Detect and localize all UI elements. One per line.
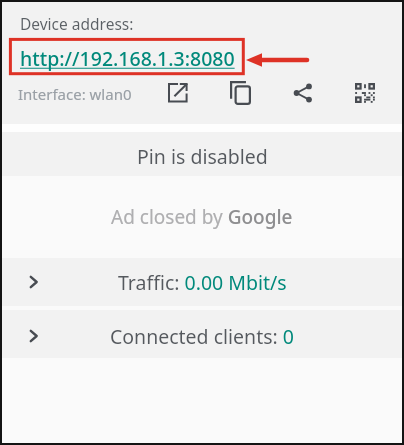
button[interactable]: Open in browser <box>162 77 194 109</box>
button[interactable]: Show QR code <box>349 77 381 109</box>
staticText: Interface: wlan0 <box>18 84 132 104</box>
button[interactable]: Pin is disabled <box>2 132 402 176</box>
button[interactable]: http://192.168.1.3:8080 <box>20 45 235 72</box>
staticText: Device address: <box>20 13 134 34</box>
button[interactable]: Share <box>287 77 319 109</box>
staticText: Pin is disabled <box>137 143 268 170</box>
button[interactable]: Copy address <box>224 77 256 109</box>
staticText: Ad closed by Google <box>111 204 293 230</box>
button[interactable]: Connected clients: 0 <box>2 310 402 358</box>
staticText: Connected clients: 0 <box>110 323 294 350</box>
staticText: Traffic: 0.00 Mbit/s <box>118 269 287 296</box>
button[interactable]: Traffic: 0.00 Mbit/s <box>2 258 402 306</box>
